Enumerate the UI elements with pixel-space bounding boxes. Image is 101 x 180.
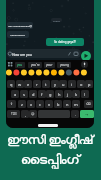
button[interactable]: f (38, 90, 46, 98)
staticText: ?123 (11, 112, 17, 116)
button[interactable]: u (59, 80, 67, 88)
button[interactable]: → (80, 110, 94, 118)
button[interactable]: z (18, 100, 26, 108)
button[interactable]: v (45, 100, 53, 108)
staticText: Hey GoodMorning😊 (8, 24, 33, 27)
button[interactable]: n (63, 100, 71, 108)
button[interactable]: j (64, 90, 72, 98)
button[interactable]: t (42, 80, 50, 88)
button[interactable]: Njanorikyu?? (7, 31, 29, 38)
button[interactable]: q (7, 80, 15, 88)
staticText: w (18, 82, 22, 87)
staticText: i (71, 82, 73, 87)
button[interactable]: g (46, 90, 54, 98)
staticText: z (21, 102, 23, 107)
staticText: k (75, 92, 78, 97)
button[interactable]: So dating geya?? (46, 38, 84, 46)
staticText: g (49, 92, 52, 97)
button[interactable]: e (24, 80, 32, 88)
button[interactable]: h (55, 90, 63, 98)
button[interactable]: ☺ (29, 110, 37, 118)
button[interactable]: c (36, 100, 44, 108)
button[interactable]: m (72, 100, 80, 108)
staticText: a (14, 92, 17, 97)
staticText: c (39, 102, 41, 107)
staticText: ☺ (31, 112, 35, 116)
staticText: Today (53, 19, 60, 22)
staticText: u (62, 82, 65, 87)
button[interactable]: s (20, 90, 28, 98)
staticText: y (54, 82, 57, 87)
button[interactable]: . (71, 110, 79, 118)
button[interactable]: w (16, 80, 24, 88)
button[interactable]: x (27, 100, 35, 108)
button[interactable]: your (44, 62, 55, 68)
staticText: v (48, 102, 51, 107)
button[interactable]: k (72, 90, 80, 98)
staticText: ⇧ (10, 102, 13, 106)
staticText: o (80, 82, 83, 87)
staticText: How are you (12, 52, 32, 57)
staticText: ⌫ (86, 102, 91, 106)
button[interactable]: a (11, 90, 19, 98)
button[interactable]: d (29, 90, 37, 98)
button[interactable] (81, 61, 88, 68)
staticText: you're (31, 63, 40, 67)
button[interactable]: ?123 (7, 110, 20, 118)
staticText: → (85, 112, 89, 117)
button[interactable]: r (33, 80, 41, 88)
button[interactable] (81, 51, 91, 61)
staticText: m (74, 102, 78, 107)
staticText: t (45, 82, 47, 87)
button[interactable]: young (57, 62, 71, 68)
staticText: ഈസി ഇംഗ്ലീഷ് (7, 131, 94, 147)
staticText: So dating geya?? (54, 40, 76, 44)
staticText: j (67, 92, 69, 97)
staticText: young (60, 63, 69, 67)
button[interactable]: How are you (7, 49, 81, 58)
staticText: d (32, 92, 35, 97)
staticText: ടൈപ്പിംഗ് (21, 154, 80, 167)
staticText: you (17, 63, 23, 67)
button[interactable]: , (21, 110, 29, 118)
staticText: l (84, 92, 86, 97)
button[interactable]: you're (28, 62, 42, 68)
staticText: q (10, 82, 13, 87)
staticText: f (41, 92, 43, 97)
staticText: r (36, 82, 38, 87)
staticText: p (88, 82, 91, 87)
staticText: Njanorikyu?? (10, 33, 26, 36)
button[interactable]: ⌫ (84, 100, 93, 108)
staticText: h (58, 92, 61, 97)
button[interactable]: l (81, 90, 89, 98)
staticText: e (27, 82, 30, 87)
staticText: , (25, 112, 26, 117)
staticText: x (30, 102, 33, 107)
button[interactable]: ⇧ (7, 100, 16, 108)
button[interactable]: o (77, 80, 85, 88)
staticText: . (75, 112, 76, 117)
staticText: your (46, 63, 53, 67)
button[interactable]: b (54, 100, 62, 108)
staticText: n (66, 102, 69, 107)
button[interactable]: Hey GoodMorning😊 (7, 22, 33, 29)
button[interactable]: you (15, 62, 25, 68)
button[interactable]: y (51, 80, 59, 88)
button[interactable]: p (85, 80, 93, 88)
staticText: b (57, 102, 60, 107)
staticText: s (23, 92, 25, 97)
button[interactable]: i (68, 80, 76, 88)
